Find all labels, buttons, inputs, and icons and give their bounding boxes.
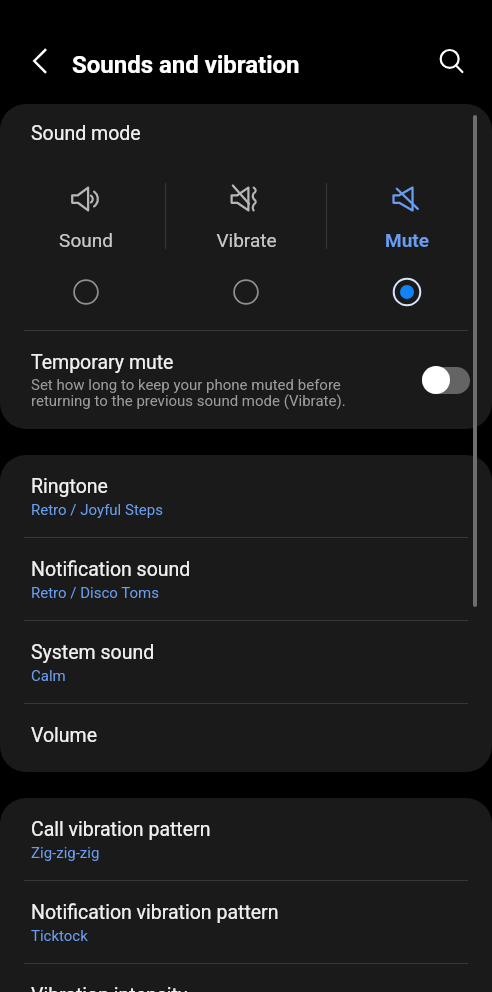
staticText: Notification vibration pattern [31,901,279,924]
button[interactable]: Mute [327,160,487,310]
button[interactable]: Search [428,39,476,87]
staticText: Calm [31,667,66,685]
button[interactable]: Vibrate [166,160,326,310]
staticText: Retro / Joyful Steps [31,501,163,519]
staticText: System sound [31,641,155,664]
staticText: Set how long to keep your phone muted be… [31,376,363,409]
staticText: Zig-zig-zig [31,844,100,862]
staticText: Vibration intensity [31,984,188,992]
button[interactable]: Temporary mute [0,331,492,429]
staticText: Ticktock [31,927,88,945]
staticText: Call vibration pattern [31,818,211,841]
staticText: Temporary mute [31,351,174,374]
button[interactable]: System sound [0,621,492,704]
button[interactable]: Notification vibration pattern [0,881,492,964]
button[interactable]: Call vibration pattern [0,798,492,881]
staticText: Mute [385,229,429,251]
staticText: Ringtone [31,475,108,498]
button[interactable]: Ringtone [0,455,492,538]
staticText: Notification sound [31,558,191,581]
button[interactable]: Notification sound [0,538,492,621]
staticText: Sounds and vibration [72,51,300,79]
button[interactable]: Volume [0,704,492,772]
staticText: Retro / Disco Toms [31,584,159,602]
staticText: Vibrate [216,229,277,251]
staticText: Sound mode [31,122,141,145]
button[interactable]: Temporary mute toggle [422,366,470,394]
button[interactable]: Navigate up [16,37,64,85]
staticText: Sound [59,229,113,251]
button[interactable]: Vibration intensity [0,964,492,992]
button[interactable]: Sound [6,160,165,310]
staticText: Volume [31,724,98,747]
